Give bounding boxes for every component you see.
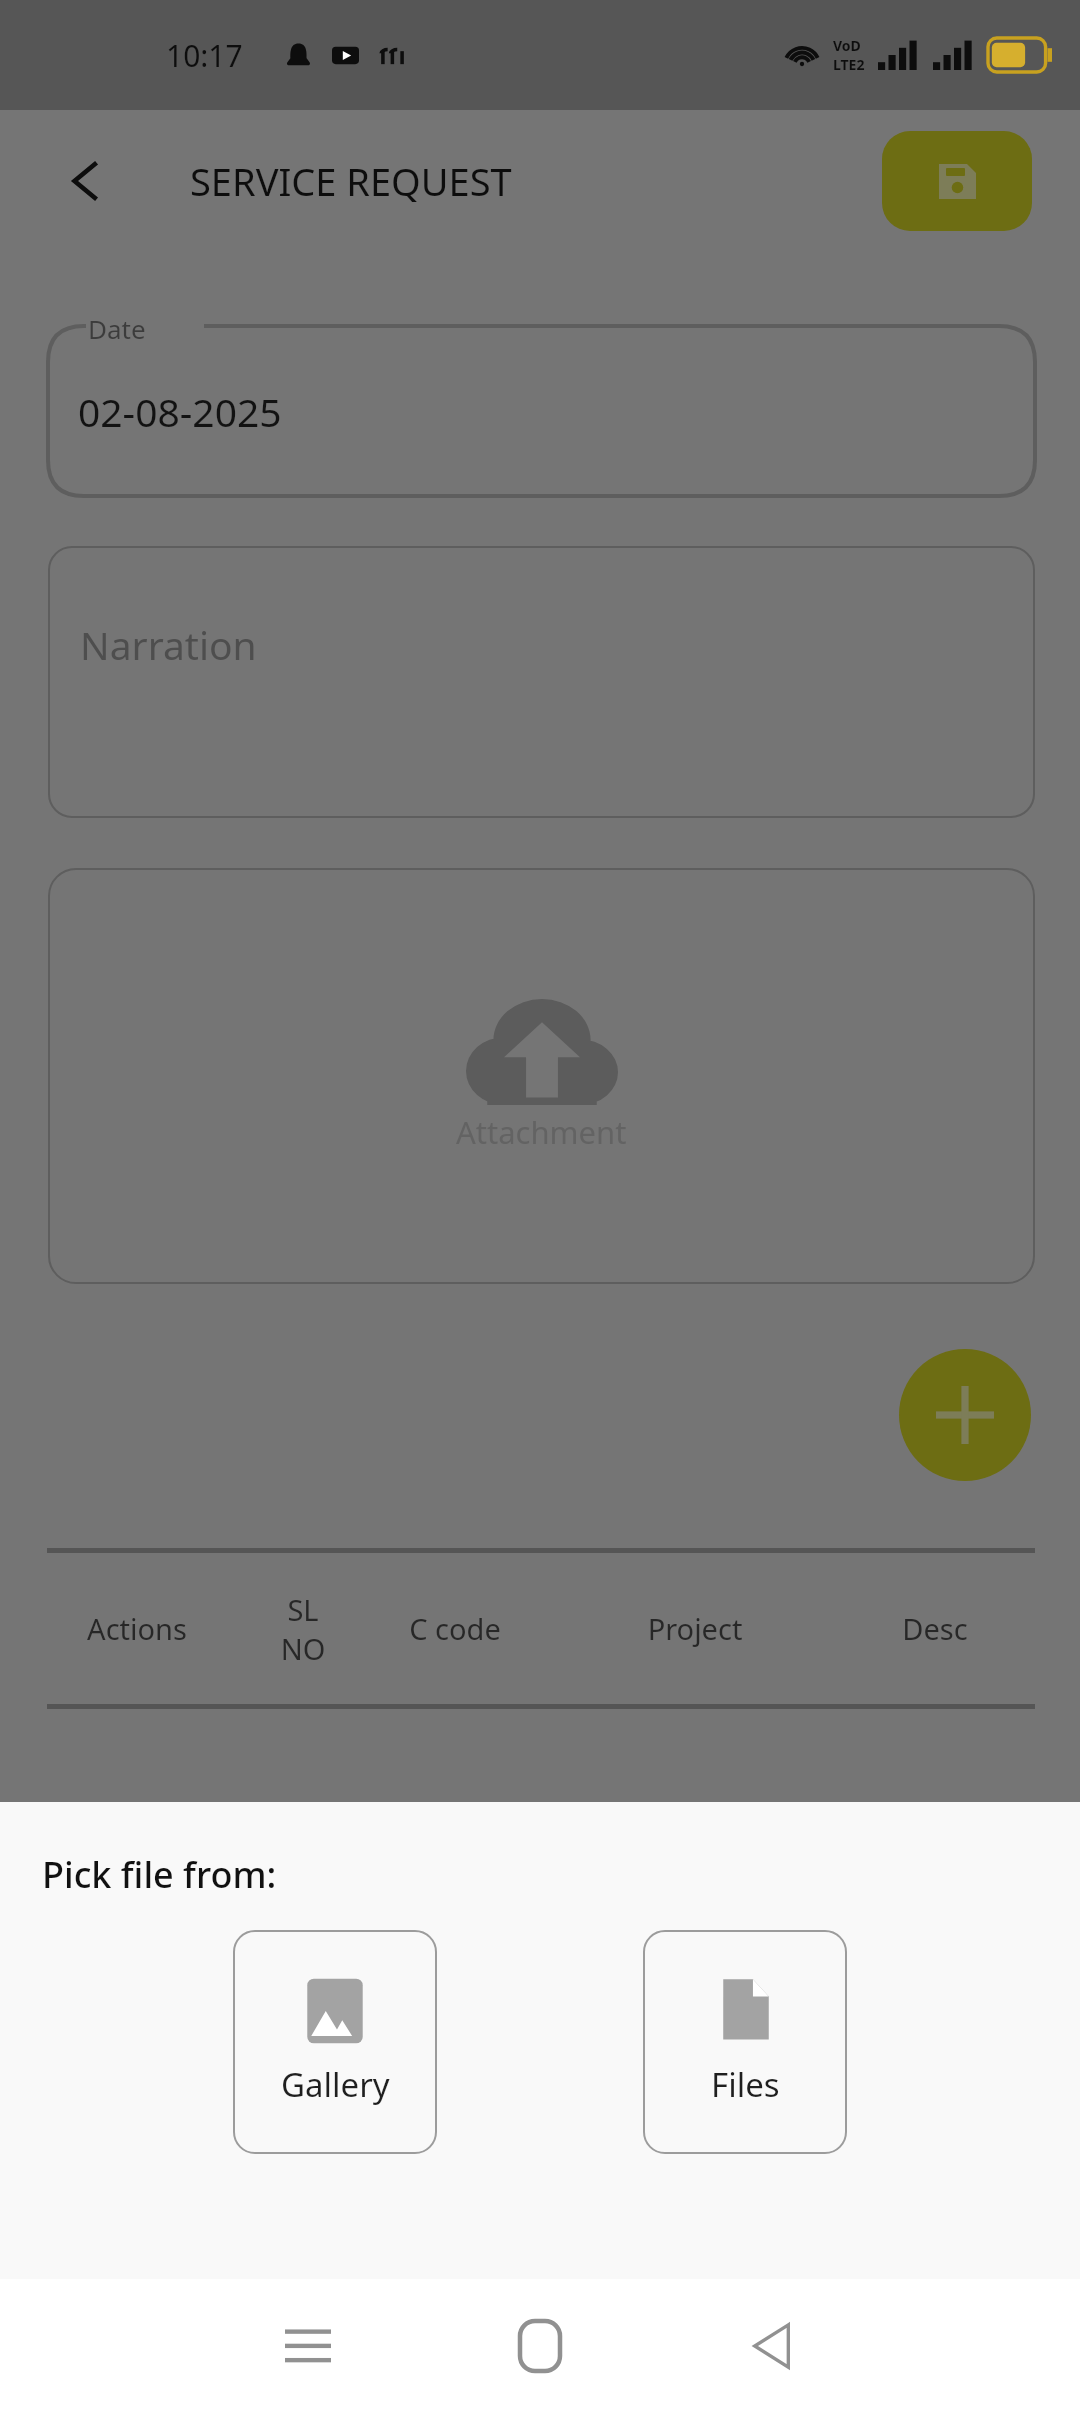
button[interactable]: Narration bbox=[48, 546, 1035, 818]
staticText: VoD bbox=[833, 36, 861, 55]
staticText: Files bbox=[711, 2062, 780, 2107]
button[interactable]: Gallery bbox=[233, 1930, 437, 2154]
staticText: Pick file from: bbox=[42, 1850, 277, 1899]
staticText: C code bbox=[365, 1609, 545, 1648]
button[interactable]: Files bbox=[643, 1930, 847, 2154]
button[interactable]: Back bbox=[56, 151, 116, 211]
staticText: LTE2 bbox=[833, 55, 865, 74]
staticText: 02-08-2025 bbox=[78, 385, 282, 438]
staticText: Desc bbox=[845, 1609, 1025, 1648]
button[interactable]: Recent apps bbox=[256, 2294, 360, 2398]
staticText: Gallery bbox=[281, 2062, 390, 2107]
button[interactable]: 02-08-2025 bbox=[48, 326, 1035, 496]
staticText: Date bbox=[88, 311, 146, 346]
staticText: SERVICE REQUEST bbox=[190, 155, 512, 207]
staticText: Actions bbox=[47, 1609, 227, 1648]
button[interactable]: Attachment bbox=[48, 868, 1035, 1284]
button[interactable]: Add bbox=[899, 1349, 1031, 1481]
staticText: SL NO bbox=[243, 1590, 363, 1668]
staticText: Narration bbox=[80, 618, 257, 671]
button[interactable]: Back bbox=[720, 2294, 824, 2398]
staticText: Attachment bbox=[456, 1111, 627, 1153]
button[interactable]: Home bbox=[488, 2294, 592, 2398]
button[interactable]: Save bbox=[882, 131, 1032, 231]
staticText: 10:17 bbox=[166, 35, 243, 76]
staticText: Project bbox=[605, 1609, 785, 1648]
